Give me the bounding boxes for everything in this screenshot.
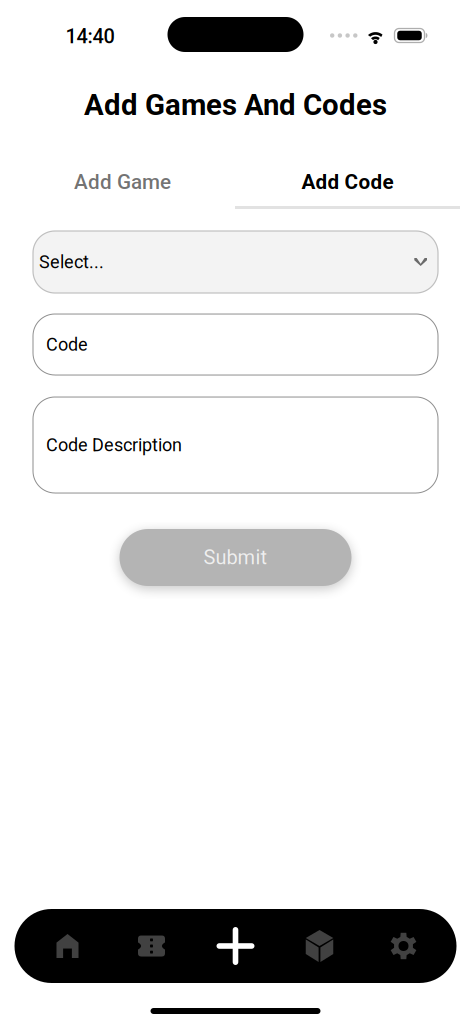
- button[interactable]: Add Game: [10, 169, 235, 209]
- button[interactable]: Add Code: [235, 169, 460, 209]
- staticText: Add Games And Codes: [84, 88, 387, 122]
- staticText: 14:40: [65, 25, 114, 48]
- staticText: Add Game: [74, 170, 171, 194]
- button[interactable]: Home: [25, 909, 109, 983]
- button[interactable]: Code Description: [33, 397, 438, 493]
- button[interactable]: Select...: [33, 231, 438, 293]
- button[interactable]: Submit: [119, 529, 351, 586]
- button[interactable]: Tickets: [109, 909, 193, 983]
- staticText: Submit: [203, 546, 267, 569]
- button[interactable]: Code: [33, 314, 438, 375]
- button[interactable]: Settings: [361, 909, 445, 983]
- staticText: Code Description: [46, 434, 182, 456]
- staticText: Code: [46, 334, 88, 355]
- button[interactable]: Games: [277, 909, 361, 983]
- staticText: Select...: [39, 251, 104, 273]
- button[interactable]: Add: [193, 909, 277, 983]
- staticText: Add Code: [301, 170, 393, 194]
